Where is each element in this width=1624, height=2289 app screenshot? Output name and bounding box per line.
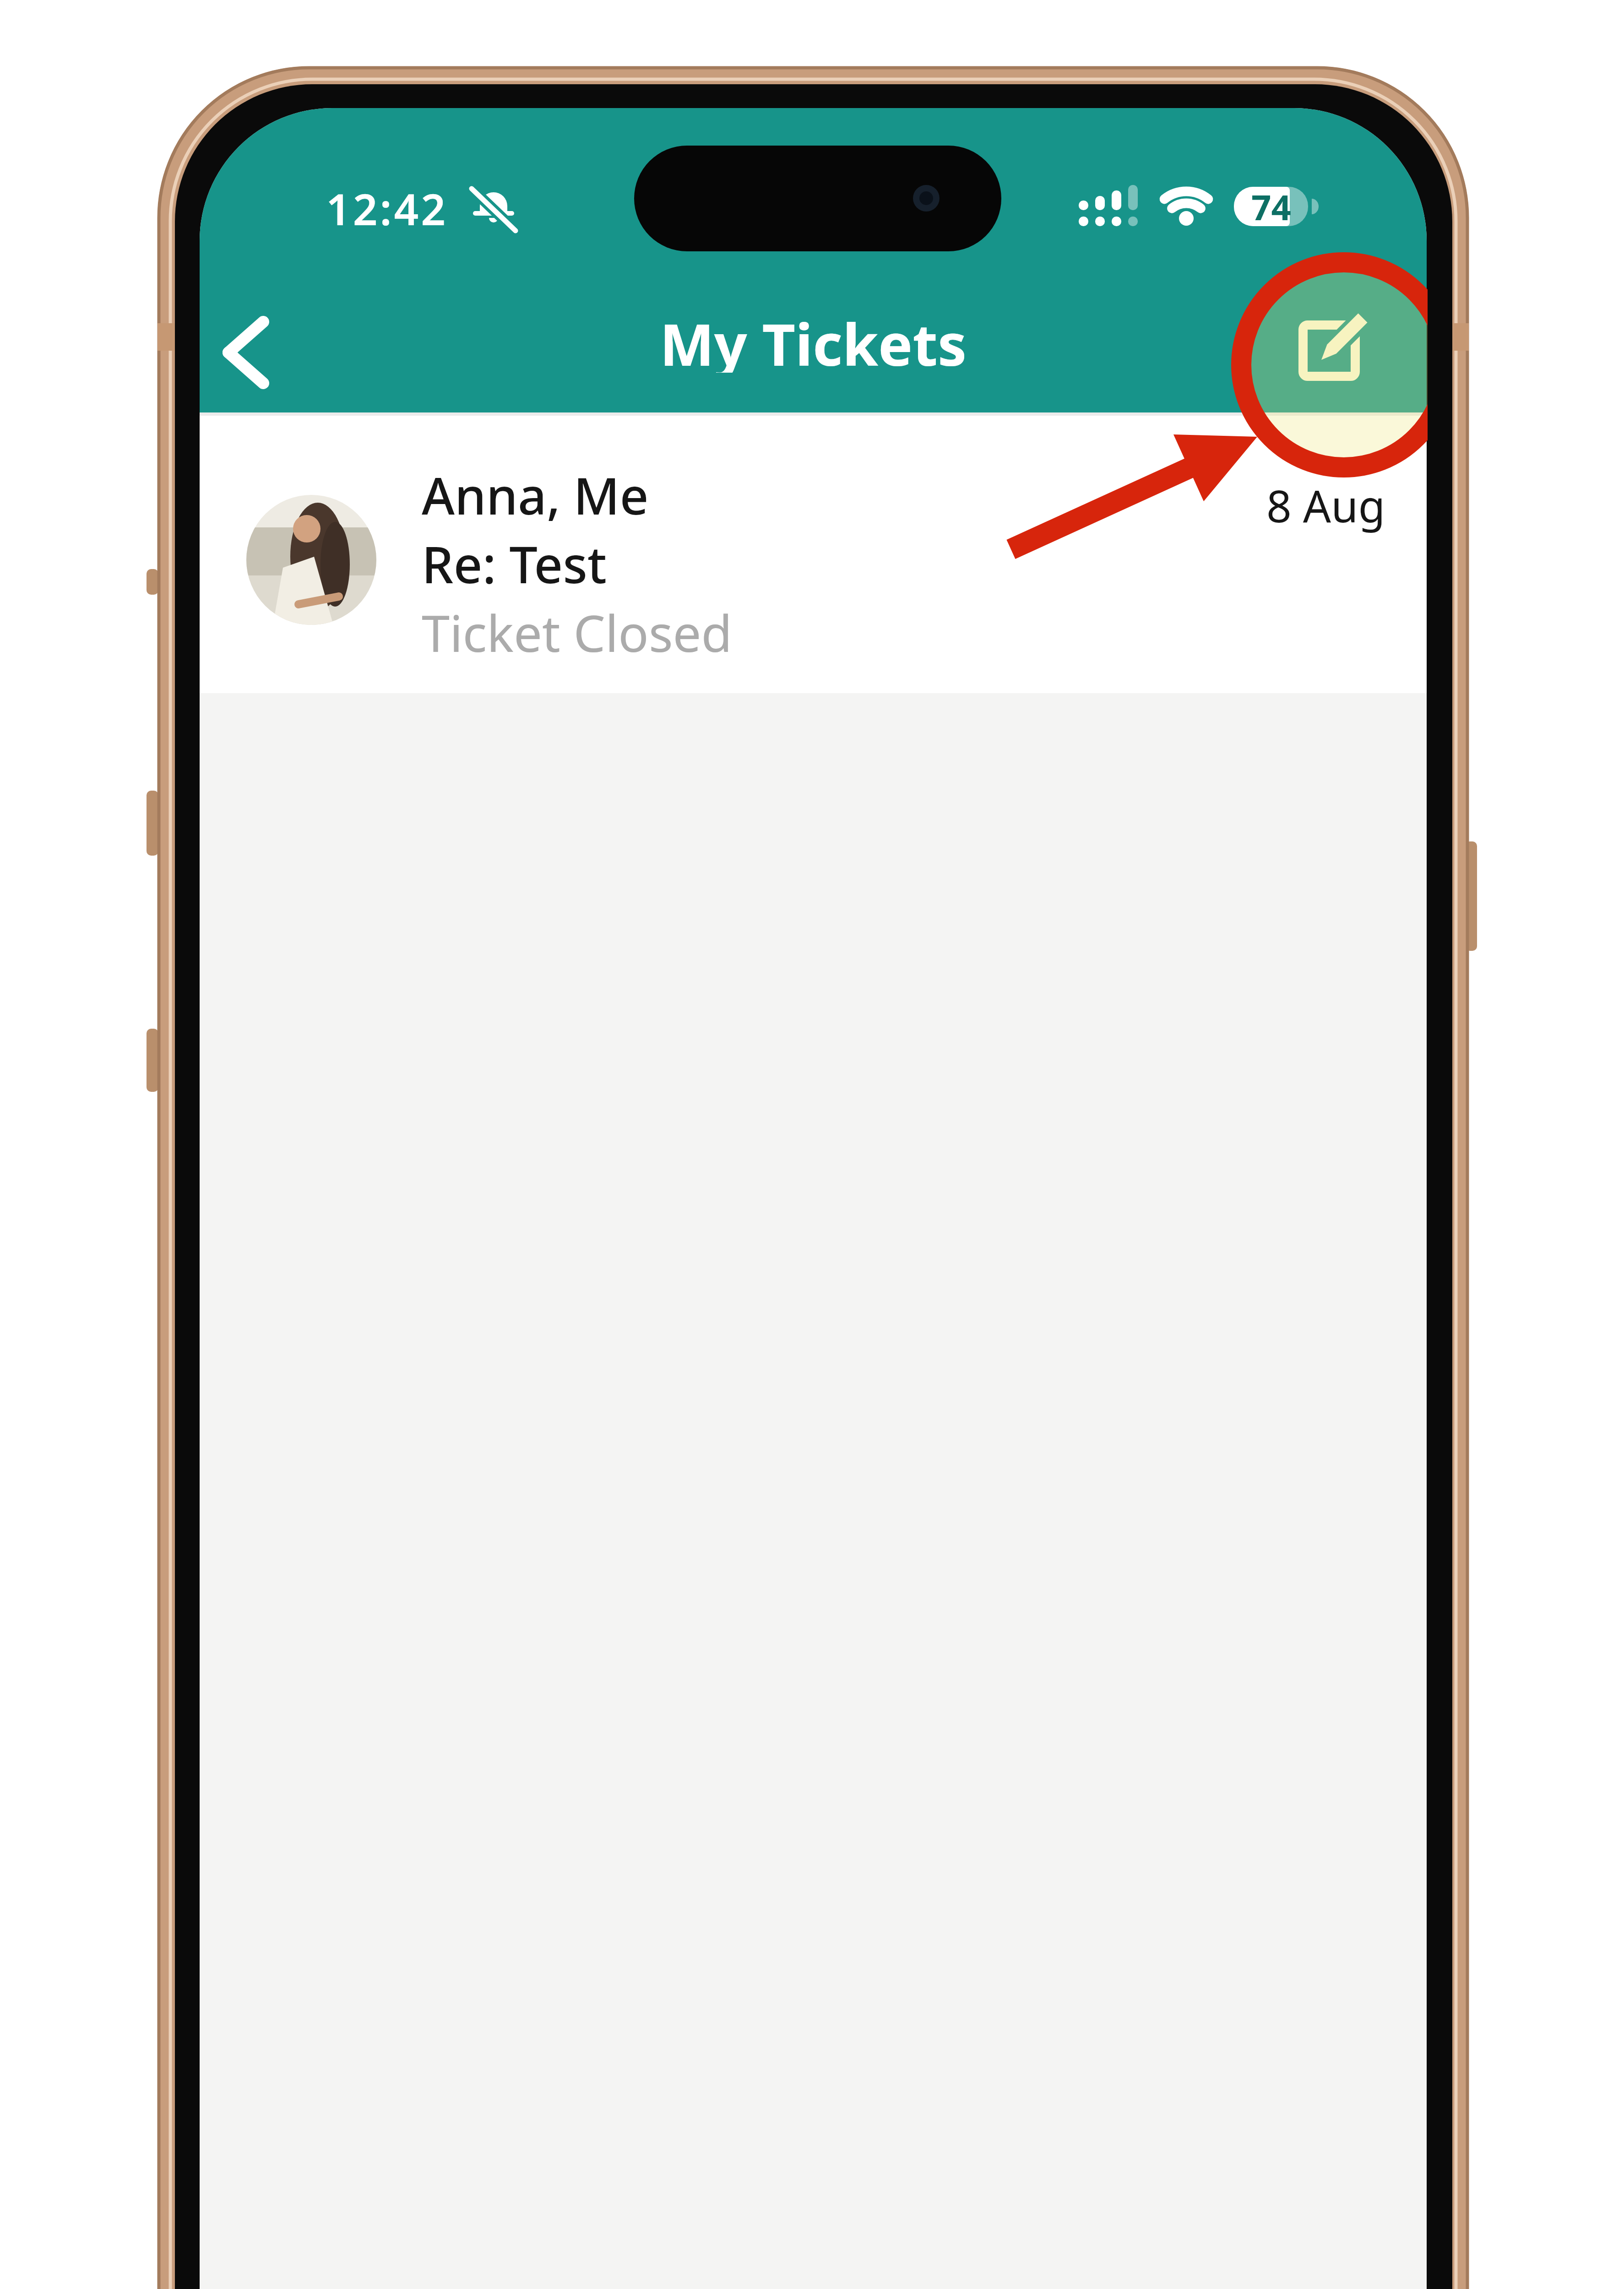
button[interactable] bbox=[1277, 300, 1383, 405]
button[interactable] bbox=[211, 302, 302, 403]
staticText: Ticket Closed bbox=[422, 598, 733, 667]
staticText: 8 Aug bbox=[1266, 475, 1385, 535]
staticText: Anna, Me bbox=[422, 461, 649, 529]
button[interactable] bbox=[205, 412, 1422, 693]
staticText: 12:42 bbox=[326, 179, 448, 234]
staticText: My Tickets bbox=[660, 304, 967, 373]
staticText: 74 bbox=[1251, 183, 1291, 231]
staticText: Re: Test bbox=[422, 529, 607, 598]
